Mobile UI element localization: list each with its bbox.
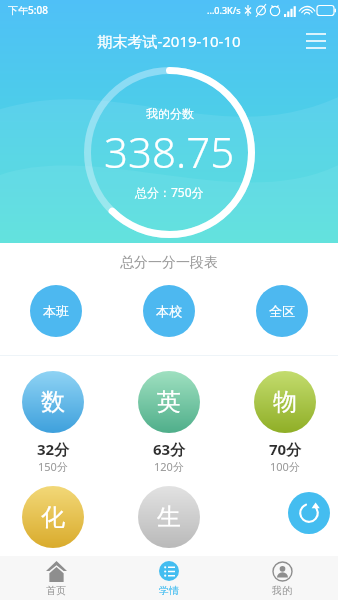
staticText: ...0.3K/s [207,4,241,16]
staticText: 338.75 [104,123,235,180]
staticText: 学情 [159,584,179,597]
staticText: 120分 [154,459,184,474]
button[interactable]: 全区 [256,285,308,337]
button[interactable]: 我的 [225,556,338,600]
staticText: 我的 [272,584,292,597]
staticText: 100分 [270,459,300,474]
button[interactable]: 学情 [112,556,225,600]
staticText: 期末考试-2019-10-10 [44,31,294,51]
staticText: 总分一分一段表 [0,254,338,272]
staticText: 本校 [156,303,182,319]
button[interactable]: Refresh [288,492,330,534]
staticText: 我的分数 [146,106,194,121]
staticText: 首页 [46,584,66,597]
staticText: 本班 [43,303,69,319]
staticText: 英 [157,387,181,417]
staticText: 150分 [38,459,68,474]
staticText: 63分 [153,439,186,459]
button[interactable]: Menu [294,24,338,58]
staticText: 生 [157,502,181,532]
staticText: 全区 [269,303,295,319]
staticText: 数 [41,387,65,417]
button[interactable]: 英 [138,371,200,474]
staticText: 32分 [37,439,70,459]
button[interactable]: 本校 [143,285,195,337]
staticText: 物 [273,387,297,417]
button[interactable]: 数 [22,371,84,474]
staticText: 70分 [269,439,302,459]
staticText: 总分：750分 [135,184,204,200]
button[interactable]: 首页 [0,556,112,600]
staticText: 下午5:08 [8,3,48,17]
button[interactable]: 物 [254,371,316,474]
staticText: 化 [41,502,65,532]
button[interactable]: 本班 [30,285,82,337]
